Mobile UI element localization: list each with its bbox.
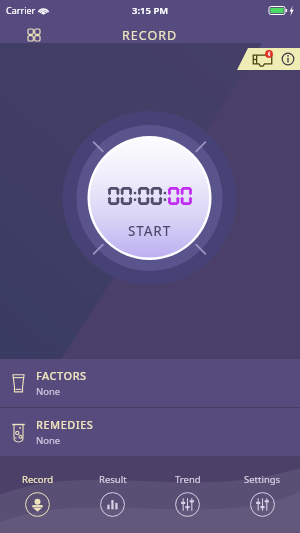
- staticText: None: [36, 385, 61, 398]
- staticText: Carrier: [6, 4, 36, 16]
- staticText: Settings: [244, 473, 281, 486]
- button[interactable]: Settings: [225, 456, 300, 533]
- staticText: Record: [22, 473, 54, 486]
- staticText: Trend: [175, 473, 201, 486]
- staticText: None: [36, 434, 61, 447]
- staticText: REMEDIES: [36, 417, 94, 432]
- staticText: 3:15 PM: [132, 4, 169, 17]
- staticText: Result: [99, 473, 127, 486]
- staticText: RECORD: [122, 27, 178, 44]
- button[interactable]: Device: [252, 51, 273, 67]
- button[interactable]: Dashboard: [22, 22, 46, 46]
- button[interactable]: START: [88, 136, 212, 260]
- button[interactable]: Info: [281, 52, 295, 66]
- staticText: START: [128, 222, 172, 240]
- button[interactable]: Record: [0, 456, 75, 533]
- button[interactable]: Result: [75, 456, 150, 533]
- staticText: FACTORS: [36, 368, 87, 383]
- button[interactable]: FACTORS: [0, 359, 300, 407]
- button[interactable]: REMEDIES: [0, 408, 300, 456]
- button[interactable]: Trend: [150, 456, 225, 533]
